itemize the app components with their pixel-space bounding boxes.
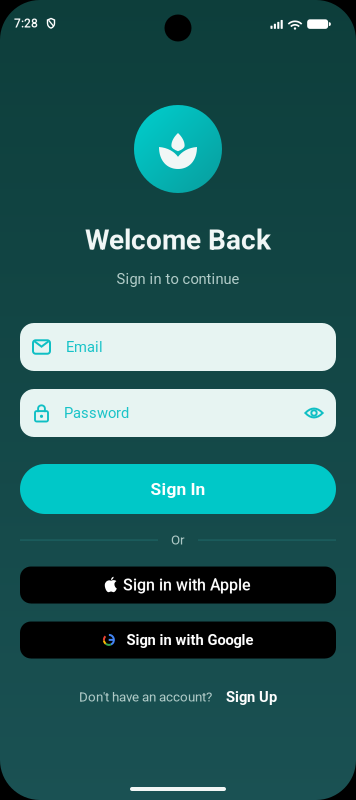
button[interactable]: Sign In bbox=[20, 464, 336, 514]
staticText: Don't have an account? bbox=[79, 689, 212, 705]
staticText: 7:28 bbox=[14, 16, 38, 30]
staticText: Password bbox=[64, 404, 129, 422]
staticText: Sign Up bbox=[226, 688, 277, 706]
staticText: Email bbox=[66, 338, 103, 356]
button[interactable]: Show password bbox=[297, 396, 331, 430]
button[interactable]: Sign in with Apple bbox=[20, 566, 336, 603]
staticText: Sign in with Google bbox=[126, 631, 253, 649]
staticText: Welcome Back bbox=[85, 224, 271, 256]
staticText: Sign in with Apple bbox=[123, 576, 251, 594]
button[interactable]: Sign Up bbox=[226, 688, 277, 706]
staticText: Sign In bbox=[150, 479, 205, 499]
staticText: Sign in to continue bbox=[116, 270, 239, 288]
button[interactable]: Sign in with Google bbox=[20, 621, 336, 658]
staticText: Or bbox=[171, 532, 185, 548]
